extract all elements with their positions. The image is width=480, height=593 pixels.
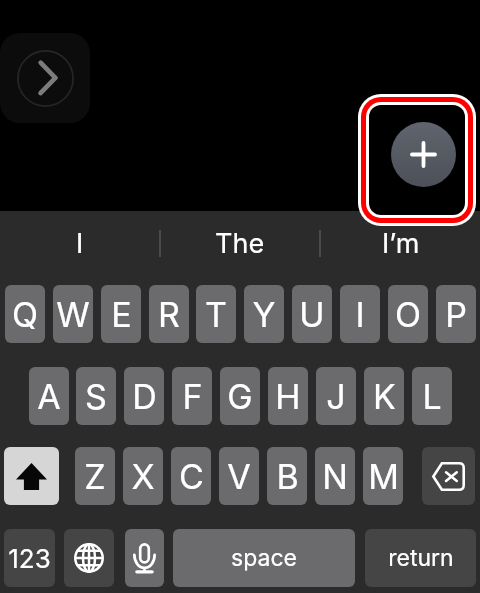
button[interactable]: 123 xyxy=(4,529,55,587)
button[interactable]: M xyxy=(363,447,403,505)
staticText: L xyxy=(422,376,442,417)
button[interactable]: Shift xyxy=(4,447,59,505)
button[interactable]: Y xyxy=(244,285,284,343)
staticText: J xyxy=(326,376,346,417)
staticText: B xyxy=(276,456,299,497)
button[interactable]: W xyxy=(53,285,93,343)
staticText: N xyxy=(322,456,348,497)
staticText: H xyxy=(275,376,301,417)
button[interactable]: Q xyxy=(5,285,45,343)
staticText: Q xyxy=(12,294,38,335)
button[interactable]: I’m xyxy=(321,211,480,275)
button[interactable]: Add xyxy=(391,122,456,187)
button[interactable]: Expand xyxy=(0,33,90,123)
staticText: T xyxy=(205,294,227,335)
staticText: F xyxy=(182,376,203,417)
button[interactable]: I xyxy=(0,211,160,275)
button[interactable]: N xyxy=(315,447,355,505)
staticText: Y xyxy=(252,294,276,335)
staticText: space xyxy=(231,544,297,572)
button[interactable]: Voice input xyxy=(125,529,164,587)
staticText: M xyxy=(368,456,399,497)
staticText: S xyxy=(85,376,107,417)
button[interactable]: E xyxy=(101,285,141,343)
button[interactable]: V xyxy=(219,447,259,505)
staticText: Z xyxy=(84,456,106,497)
button[interactable]: T xyxy=(196,285,236,343)
staticText: X xyxy=(131,456,155,497)
button[interactable]: Z xyxy=(75,447,115,505)
button[interactable]: L xyxy=(412,367,452,425)
button[interactable]: Backspace xyxy=(422,447,475,505)
staticText: I’m xyxy=(382,227,420,260)
button[interactable]: H xyxy=(268,367,308,425)
staticText: The xyxy=(215,227,265,260)
button[interactable]: A xyxy=(29,367,69,425)
staticText: 123 xyxy=(8,543,51,574)
button[interactable]: The xyxy=(160,211,320,275)
staticText: I xyxy=(76,227,84,260)
staticText: R xyxy=(158,294,180,335)
button[interactable]: F xyxy=(172,367,212,425)
button[interactable]: J xyxy=(316,367,356,425)
button[interactable]: P xyxy=(436,285,476,343)
staticText: E xyxy=(111,294,132,335)
staticText: P xyxy=(445,294,467,335)
button[interactable]: R xyxy=(149,285,189,343)
staticText: I xyxy=(355,294,365,335)
staticText: A xyxy=(37,376,61,417)
button[interactable]: O xyxy=(388,285,428,343)
staticText: W xyxy=(56,294,90,335)
staticText: G xyxy=(227,376,253,417)
button[interactable]: C xyxy=(171,447,211,505)
button[interactable]: D xyxy=(124,367,164,425)
button[interactable]: B xyxy=(267,447,307,505)
button[interactable]: K xyxy=(364,367,404,425)
staticText: U xyxy=(299,294,325,335)
button[interactable]: return xyxy=(365,529,476,587)
button[interactable]: X xyxy=(123,447,163,505)
button[interactable]: I xyxy=(340,285,380,343)
button[interactable]: U xyxy=(292,285,332,343)
staticText: D xyxy=(132,376,157,417)
staticText: V xyxy=(227,456,251,497)
staticText: return xyxy=(388,544,454,572)
staticText: C xyxy=(179,456,204,497)
button[interactable]: Change keyboard xyxy=(64,529,114,587)
button[interactable]: S xyxy=(76,367,116,425)
staticText: O xyxy=(395,294,421,335)
button[interactable]: space xyxy=(173,529,355,587)
button[interactable]: G xyxy=(220,367,260,425)
staticText: K xyxy=(373,376,396,417)
